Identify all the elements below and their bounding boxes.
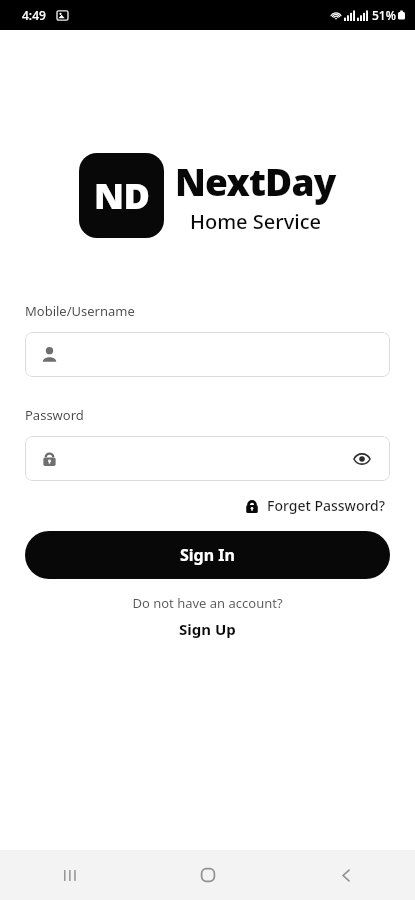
- staticText: Do not have an account?: [0, 594, 415, 612]
- button[interactable]: Sign In: [25, 531, 390, 579]
- staticText: NextDay: [175, 156, 336, 206]
- button[interactable]: Home: [139, 850, 277, 900]
- staticText: Password: [25, 406, 84, 424]
- staticText: ND: [94, 171, 150, 220]
- staticText: 4:49: [22, 7, 46, 23]
- button[interactable]: Recent apps: [0, 850, 139, 900]
- staticText: 51%: [372, 7, 396, 23]
- staticText: Forget Password?: [267, 496, 386, 515]
- button[interactable]: Show password: [350, 447, 374, 471]
- button[interactable]: Forget Password?: [240, 493, 390, 518]
- staticText: Home Service: [190, 208, 321, 235]
- button[interactable]: Back: [277, 850, 415, 900]
- staticText: Mobile/Username: [25, 302, 135, 320]
- staticText: Sign In: [180, 544, 235, 566]
- staticText: Sign Up: [179, 619, 236, 639]
- button[interactable]: Sign Up: [171, 617, 244, 641]
- button[interactable]: Show password: [25, 436, 390, 481]
- button[interactable]: [25, 332, 390, 377]
